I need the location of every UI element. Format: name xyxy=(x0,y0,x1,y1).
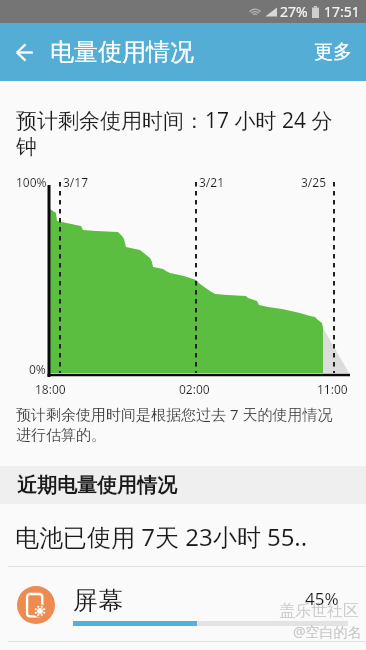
staticText: 3/17 xyxy=(63,174,89,190)
staticText: 100% xyxy=(16,174,47,190)
staticText: 更多 xyxy=(314,40,352,64)
staticText: 预计剩余使用时间：17 小时 24 分钟 xyxy=(16,106,341,160)
staticText: @空白的名 xyxy=(293,622,362,641)
button[interactable]: 更多 xyxy=(300,28,366,76)
staticText: 18:00 xyxy=(35,381,66,397)
staticText: 11:00 xyxy=(317,381,348,397)
staticText: 02:00 xyxy=(179,381,210,397)
button[interactable]: Back xyxy=(0,28,48,76)
staticText: 0% xyxy=(29,361,46,377)
button[interactable]: 屏幕 xyxy=(0,567,366,641)
staticText: 电量使用情况 xyxy=(50,37,194,67)
staticText: 预计剩余使用时间是根据您过去 7 天的使用情况进行估算的。 xyxy=(16,404,346,444)
staticText: 近期电量使用情况 xyxy=(17,473,177,498)
staticText: 屏幕 xyxy=(73,585,123,616)
staticText: 3/25 xyxy=(301,174,327,190)
staticText: 45% xyxy=(305,587,339,610)
staticText: 3/21 xyxy=(199,174,225,190)
staticText: 17:51 xyxy=(324,2,360,21)
staticText: 电池已使用 7天 23小时 55.. xyxy=(15,520,308,553)
staticText: 盖乐世社区 xyxy=(279,601,359,621)
staticText: 27% xyxy=(280,2,308,21)
